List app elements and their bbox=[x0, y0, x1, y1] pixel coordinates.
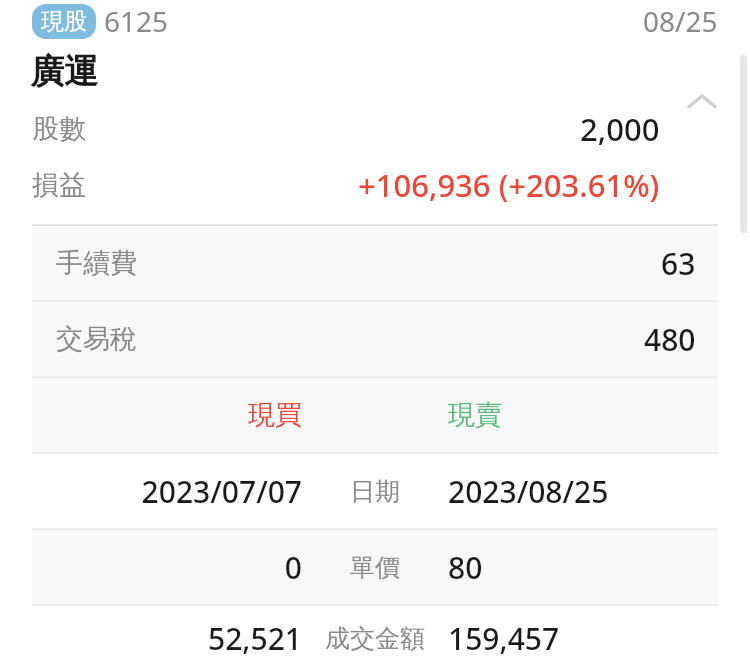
staticText: 股數 bbox=[32, 112, 86, 146]
staticText: 現買 bbox=[32, 398, 302, 432]
staticText: +106,936 (+203.61%) bbox=[358, 164, 660, 206]
button[interactable]: 52,521 bbox=[32, 606, 718, 670]
staticText: 0 bbox=[32, 547, 302, 588]
staticText: 手續費 bbox=[56, 246, 137, 280]
button[interactable]: 2023/07/07 bbox=[32, 454, 718, 528]
button[interactable]: 0 bbox=[32, 530, 718, 604]
button[interactable]: 收合 bbox=[676, 76, 728, 128]
staticText: 現股 bbox=[41, 7, 87, 36]
staticText: 2,000 bbox=[580, 108, 660, 150]
button[interactable]: 手續費 bbox=[32, 226, 718, 300]
staticText: 廣運 bbox=[30, 50, 98, 93]
staticText: 80 bbox=[448, 547, 718, 588]
button[interactable]: 交易稅 bbox=[32, 302, 718, 376]
staticText: 現賣 bbox=[448, 398, 718, 432]
staticText: 單價 bbox=[350, 552, 400, 583]
staticText: 成交金額 bbox=[325, 623, 425, 654]
staticText: 日期 bbox=[350, 476, 400, 507]
staticText: 6125 bbox=[104, 2, 169, 40]
staticText: 52,521 bbox=[32, 618, 302, 659]
staticText: 2023/07/07 bbox=[32, 471, 302, 512]
staticText: 08/25 bbox=[643, 2, 718, 40]
staticText: 480 bbox=[644, 319, 696, 360]
button[interactable]: 現股 bbox=[41, 7, 87, 36]
staticText: 159,457 bbox=[448, 618, 718, 659]
staticText: 63 bbox=[661, 243, 696, 284]
staticText: 2023/08/25 bbox=[448, 471, 718, 512]
staticText: 損益 bbox=[32, 168, 86, 202]
staticText: 交易稅 bbox=[56, 322, 137, 356]
